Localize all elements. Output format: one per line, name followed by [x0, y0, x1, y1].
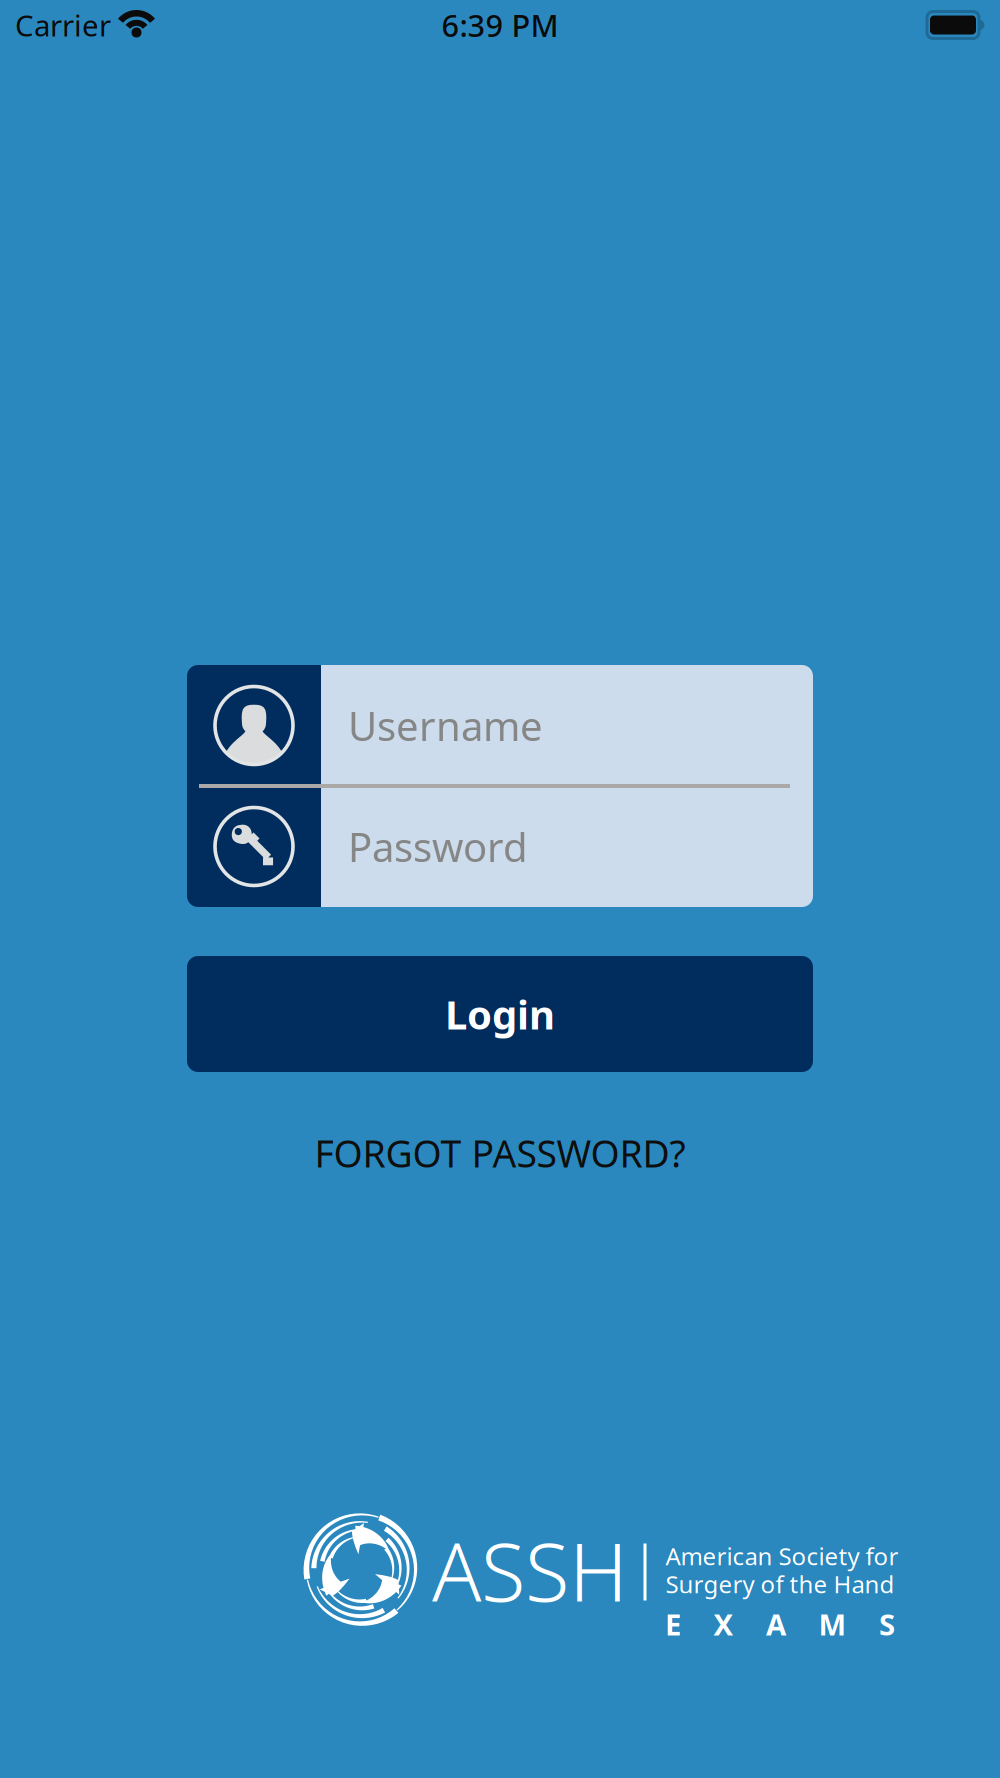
staticText: 6:39 PM	[441, 5, 558, 45]
staticText: EXAMS	[665, 1604, 895, 1643]
button[interactable]: Username	[187, 665, 813, 786]
staticText: Login	[445, 987, 555, 1040]
staticText: American Society for	[665, 1540, 898, 1572]
staticText: ASSH	[432, 1516, 628, 1624]
button[interactable]: FORGOT PASSWORD?	[200, 1121, 800, 1185]
staticText: Surgery of the Hand	[665, 1568, 894, 1600]
staticText: Password	[348, 820, 528, 873]
staticText: Username	[348, 699, 543, 752]
button[interactable]: Password	[187, 786, 813, 907]
staticText: FORGOT PASSWORD?	[314, 1128, 685, 1178]
button[interactable]: Login	[187, 956, 813, 1072]
staticText: Carrier	[15, 5, 111, 44]
